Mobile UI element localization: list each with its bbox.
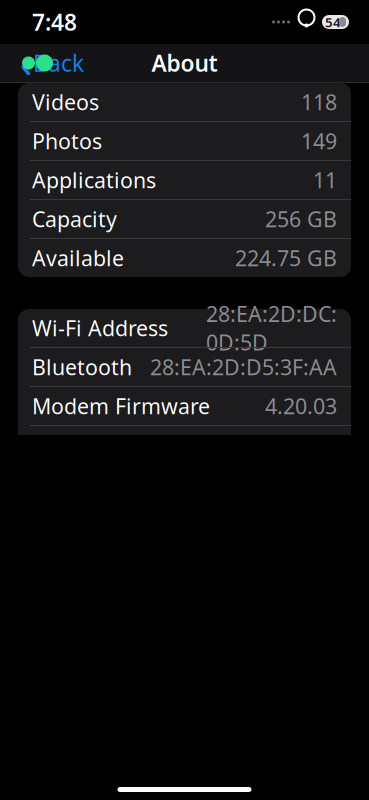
staticText: Available (32, 244, 124, 272)
staticText: Modem Firmware (32, 392, 210, 420)
button[interactable]: Back (10, 44, 94, 82)
button[interactable]: Applications (18, 161, 351, 199)
staticText: 4.20.03 (265, 392, 337, 420)
staticText: › (329, 427, 337, 463)
button[interactable]: Photos (18, 122, 351, 160)
staticText: 28:EA:2D:D5:3F:AA (150, 353, 337, 381)
staticText: Bluetooth (32, 353, 132, 381)
staticText: 118 (301, 88, 337, 116)
staticText: ‹ (20, 38, 32, 88)
staticText: 11 (313, 166, 337, 194)
staticText: 28:EA:2D:DC:0D:5D (206, 300, 337, 356)
button[interactable]: Videos (18, 83, 351, 121)
staticText: 149 (301, 127, 337, 155)
button[interactable]: Available (18, 239, 351, 277)
staticText: 224.75 GB (235, 244, 337, 272)
button[interactable]: Capacity (18, 200, 351, 238)
button[interactable]: Modem Firmware (18, 387, 351, 425)
staticText: 7:48 (32, 7, 77, 37)
staticText: About (151, 48, 217, 78)
staticText: Videos (32, 88, 99, 116)
button[interactable]: SEID (18, 426, 351, 464)
staticText: Applications (32, 166, 156, 194)
staticText: Capacity (32, 205, 117, 233)
staticText: 54 (325, 13, 341, 31)
button[interactable]: Wi-Fi Address (18, 309, 351, 347)
staticText: 256 GB (265, 205, 337, 233)
button[interactable]: Bluetooth (18, 348, 351, 386)
staticText: Back (33, 48, 84, 78)
staticText: Wi-Fi Address (32, 314, 168, 342)
staticText: Photos (32, 127, 102, 155)
staticText: SEID (32, 431, 79, 459)
